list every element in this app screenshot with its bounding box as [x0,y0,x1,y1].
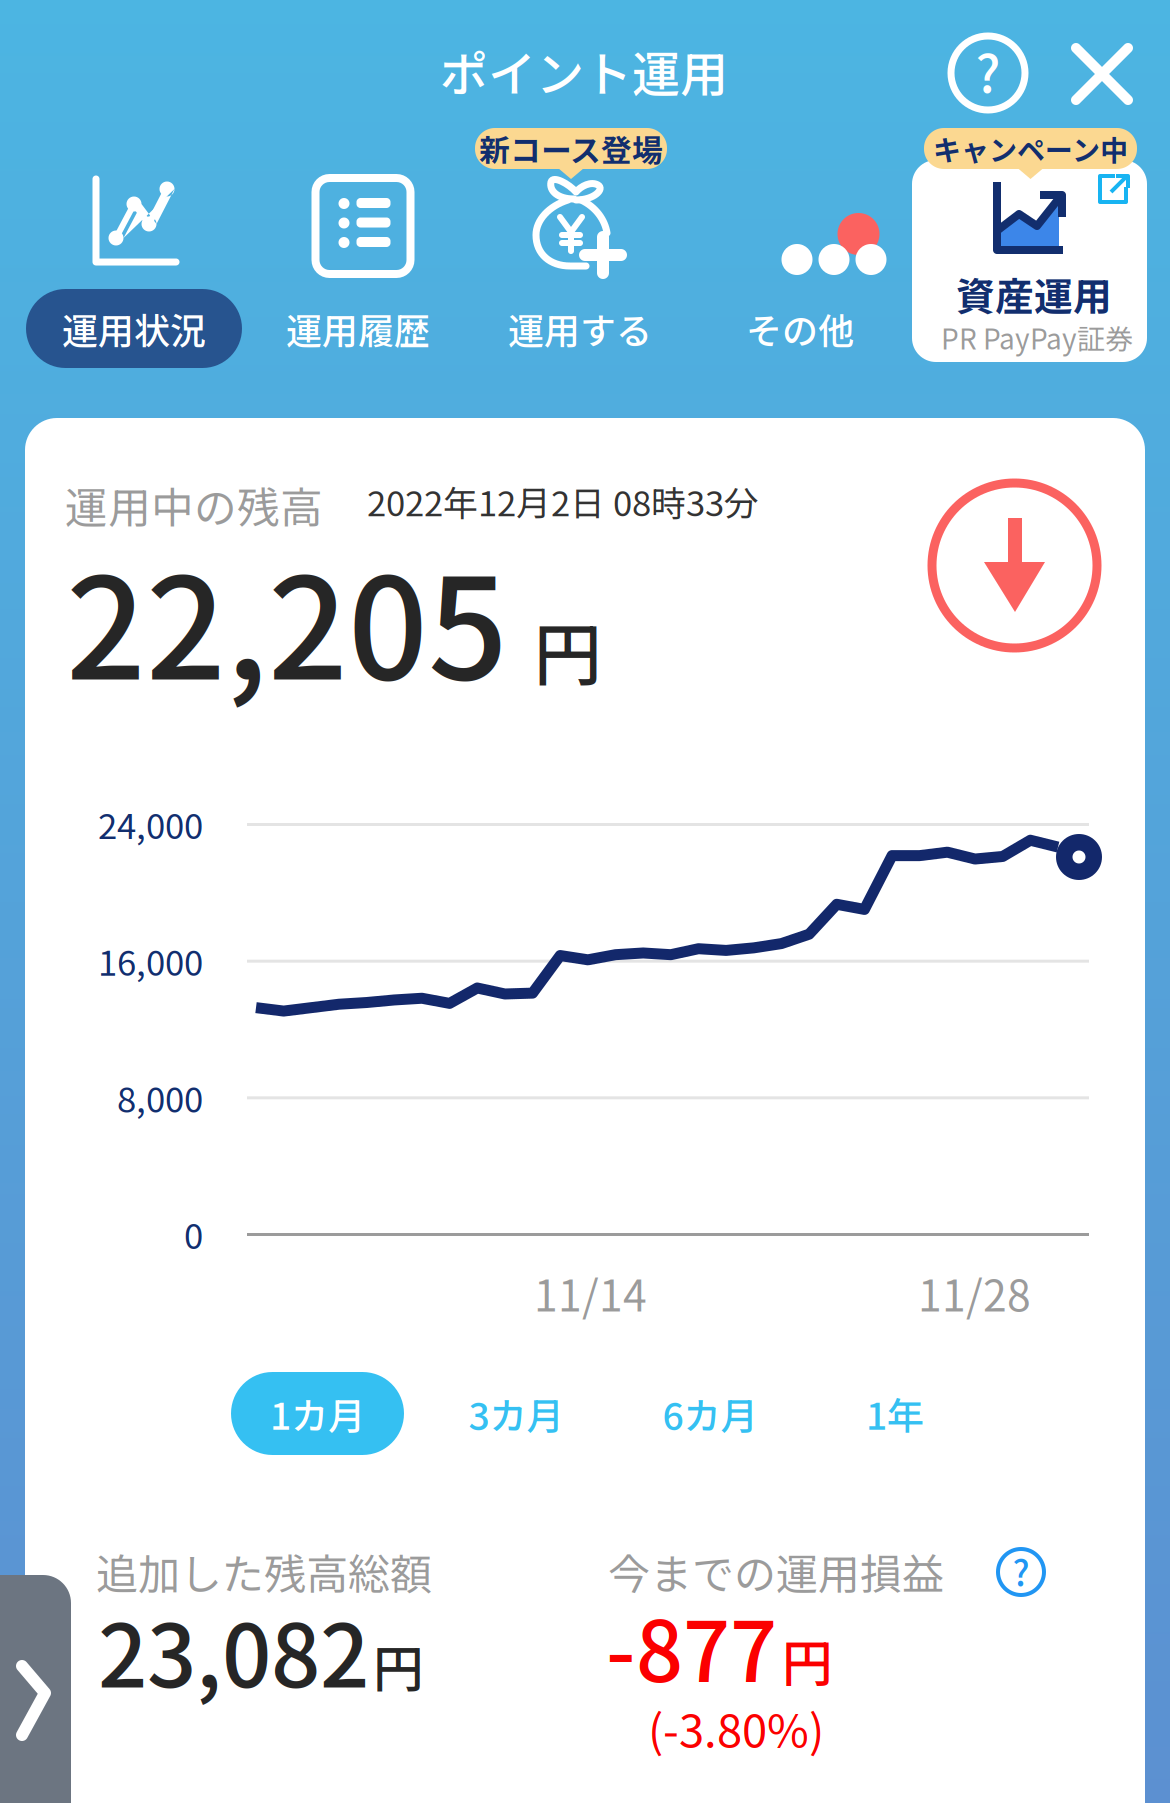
staticText: 追加した残高総額 [96,1541,432,1602]
button[interactable]: 6カ月 [660,1372,760,1455]
staticText: キャンペーン中 [933,128,1128,169]
staticText: 円 [534,600,602,699]
staticText: -877 [606,1586,777,1706]
staticText: 2022年12月2日 08時33分 [367,476,759,526]
staticText: PR PayPay証券 [941,317,1133,357]
button[interactable]: その他 [692,178,908,368]
staticText: 8,000 [117,1072,203,1122]
staticText: 円 [782,1623,833,1696]
staticText: 1年 [866,1386,924,1441]
button[interactable]: 運用する [472,172,688,368]
staticText: 新コース登場 [479,126,663,171]
staticText: 運用状況 [62,302,206,354]
staticText: 運用する [508,302,652,354]
staticText: 今までの運用損益 [608,1541,944,1602]
button[interactable]: 1カ月 [231,1372,404,1455]
staticText: 6カ月 [662,1386,757,1441]
staticText: 資産運用 [956,266,1112,322]
button[interactable]: 運用履歴 [250,178,466,368]
button[interactable]: ヘルプ [951,36,1025,110]
staticText: ? [975,34,1000,108]
staticText: 3カ月 [468,1386,563,1441]
staticText: ? [1012,1546,1029,1596]
staticText: 24,000 [98,799,203,849]
button[interactable]: 運用損益とは [998,1549,1044,1595]
staticText: 運用中の残高 [65,474,323,536]
staticText: 円 [373,1629,424,1702]
staticText: (-3.80%) [648,1695,824,1761]
staticText: 22,205 [66,517,508,720]
staticText: 1カ月 [270,1386,365,1441]
button[interactable]: 3カ月 [466,1372,566,1455]
button[interactable]: サイドメニューを開く [0,1575,71,1803]
staticText: その他 [746,302,854,354]
button[interactable]: 閉じる [1072,44,1132,104]
button[interactable]: 1年 [855,1372,935,1455]
staticText: ポイント運用 [440,36,728,105]
staticText: 16,000 [98,936,203,986]
button[interactable]: 資産運用 [912,160,1147,362]
staticText: 11/28 [918,1262,1031,1324]
staticText: 0 [184,1209,203,1259]
staticText: 運用履歴 [286,302,430,354]
button[interactable]: 運用状況 [26,178,242,368]
staticText: 11/14 [534,1262,647,1324]
staticText: 23,082 [98,1587,369,1712]
